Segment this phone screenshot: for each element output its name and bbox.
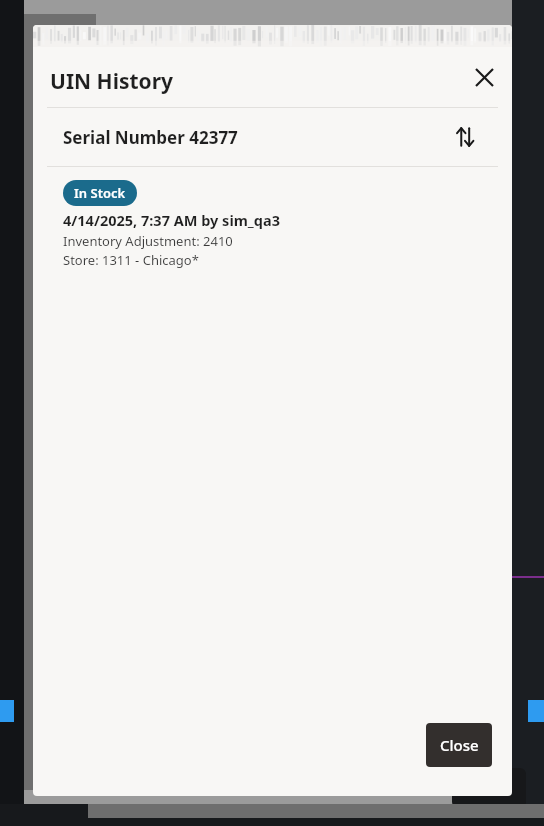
staticText: In Stock — [74, 184, 126, 202]
button[interactable]: In Stock — [63, 180, 137, 206]
staticText: Serial Number 42377 — [63, 126, 238, 149]
button[interactable]: Sort — [448, 120, 482, 154]
button[interactable]: Close — [426, 723, 492, 767]
button[interactable]: Close dialog — [462, 55, 506, 99]
staticText: Close — [440, 735, 479, 755]
staticText: UIN History — [50, 67, 174, 96]
staticText: 4/14/2025, 7:37 AM by sim_qa3 — [63, 210, 280, 230]
staticText: Store: 1311 - Chicago* — [63, 251, 199, 269]
button[interactable]: Serial Number 42377 — [33, 108, 512, 166]
staticText: Inventory Adjustment: 2410 — [63, 232, 233, 250]
